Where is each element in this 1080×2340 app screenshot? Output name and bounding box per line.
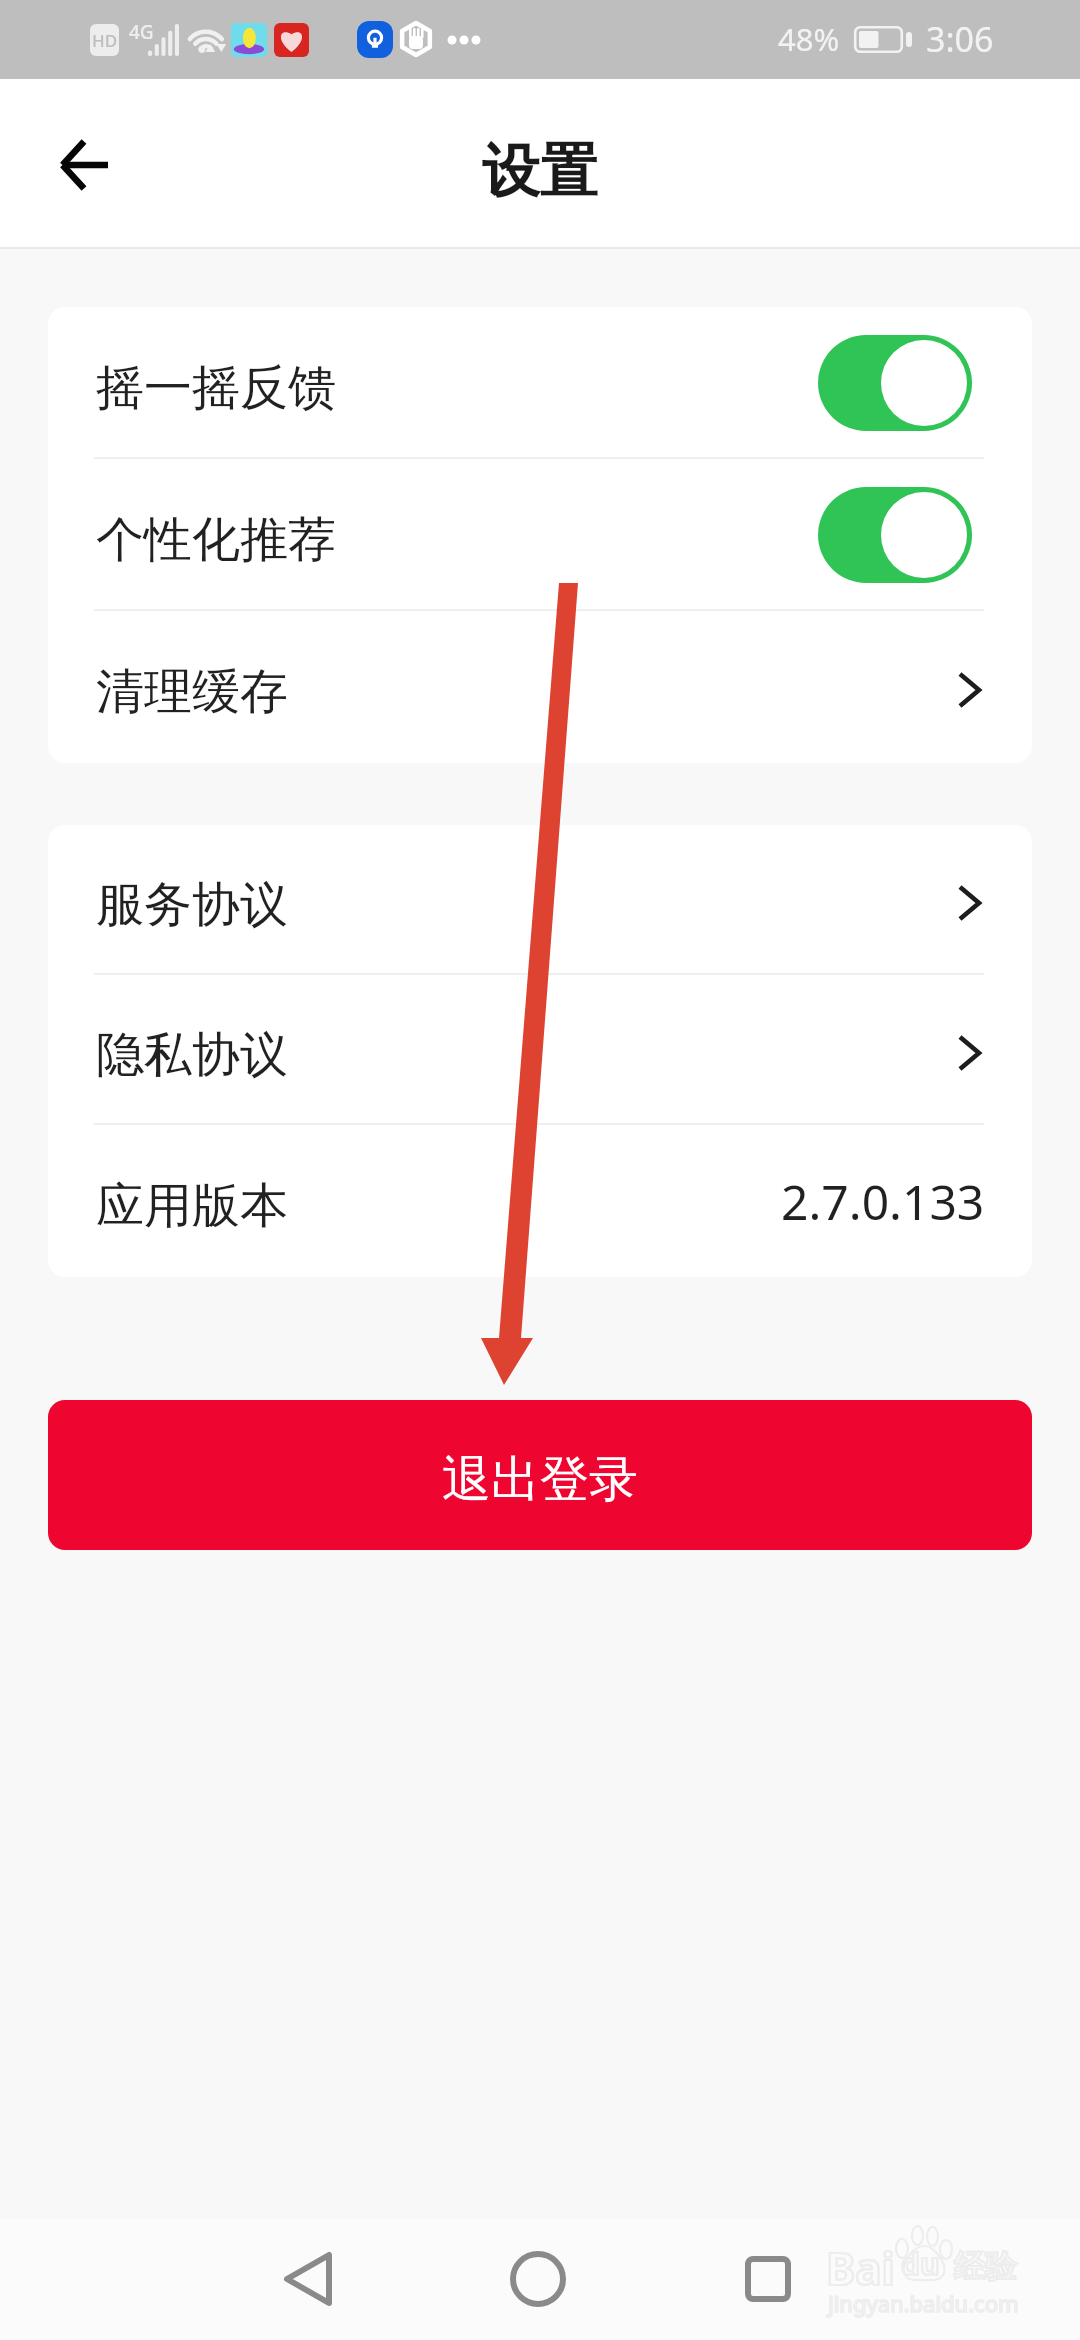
staticText: 服务协议 xyxy=(96,875,288,935)
staticText: 经验 xyxy=(954,2247,1016,2286)
staticText: du xyxy=(901,2243,940,2284)
staticText: 隐私协议 xyxy=(96,1025,288,1085)
button[interactable]: 个性化推荐 xyxy=(48,459,1032,611)
button[interactable]: Toggle switch xyxy=(818,487,972,583)
staticText: 3:06 xyxy=(926,16,994,62)
staticText: Bai xyxy=(826,2238,895,2298)
button[interactable]: 服务协议 xyxy=(48,825,1032,975)
button[interactable]: 摇一摇反馈 xyxy=(48,307,1032,459)
button[interactable]: 隐私协议 xyxy=(48,975,1032,1125)
staticText: 48% xyxy=(778,18,840,60)
button[interactable]: 退出登录 xyxy=(48,1400,1032,1550)
button[interactable]: Back xyxy=(248,2219,368,2339)
staticText: 4G xyxy=(129,19,154,45)
staticText: 个性化推荐 xyxy=(96,510,336,570)
button[interactable]: Home xyxy=(478,2219,598,2339)
button[interactable]: 应用版本 xyxy=(48,1125,1032,1277)
staticText: 2.7.0.133 xyxy=(781,1169,985,1234)
button[interactable]: Recent apps xyxy=(708,2219,828,2339)
staticText: 摇一摇反馈 xyxy=(96,358,336,418)
button[interactable]: 清理缓存 xyxy=(48,611,1032,763)
staticText: 清理缓存 xyxy=(96,662,288,722)
staticText: HD xyxy=(92,29,118,52)
button[interactable]: Toggle switch xyxy=(818,335,972,431)
staticText: jingyan.baidu.com xyxy=(828,2288,1019,2318)
button[interactable]: Back xyxy=(24,105,144,225)
staticText: 退出登录 xyxy=(442,1449,638,1511)
staticText: 应用版本 xyxy=(96,1176,288,1236)
staticText: 设置 xyxy=(482,135,598,208)
